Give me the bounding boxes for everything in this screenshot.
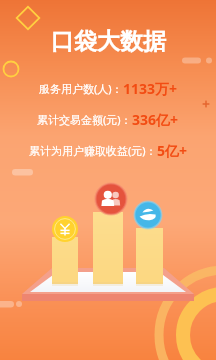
staticText: 1133万+ xyxy=(123,79,178,98)
staticText: 5亿+ xyxy=(157,141,188,160)
staticText: 口袋大数据 xyxy=(51,27,166,56)
staticText: 累计交易金额(元)： xyxy=(37,112,132,127)
button[interactable]: 累计交易金额(元)： xyxy=(0,110,216,129)
staticText: 336亿+ xyxy=(132,110,179,129)
staticText: 服务用户数(人)： xyxy=(39,81,123,96)
other: 业务数据柱状图 xyxy=(0,0,216,360)
staticText: 累计为用户赚取收益(元)： xyxy=(29,143,157,158)
button[interactable]: 口袋大数据 xyxy=(0,27,216,56)
button[interactable]: 服务用户数(人)： xyxy=(0,79,216,98)
button[interactable]: 累计为用户赚取收益(元)： xyxy=(0,141,216,160)
